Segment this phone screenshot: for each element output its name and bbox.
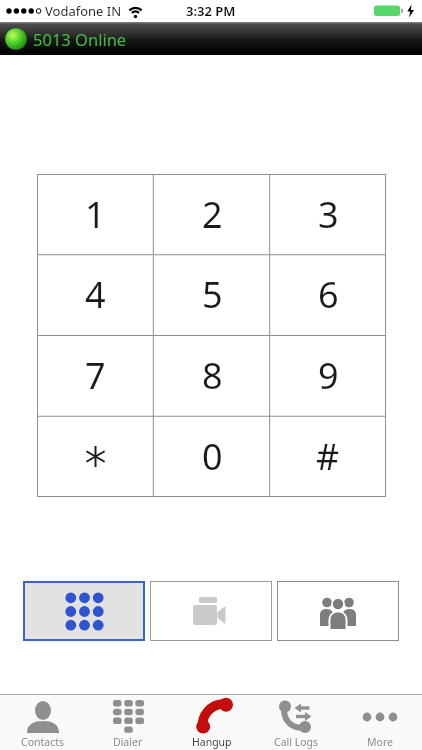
staticText: Contacts bbox=[21, 735, 65, 749]
button[interactable]: More bbox=[338, 695, 422, 750]
button[interactable] bbox=[23, 581, 145, 641]
staticText: 6 bbox=[318, 270, 339, 319]
staticText: # bbox=[316, 432, 340, 481]
button[interactable]: Contacts bbox=[0, 695, 85, 750]
button[interactable]: 3 bbox=[270, 174, 386, 254]
button[interactable]: Call Logs bbox=[254, 695, 338, 750]
staticText: 0 bbox=[202, 432, 223, 481]
staticText: Hangup bbox=[192, 735, 232, 749]
button[interactable]: 7 bbox=[37, 335, 154, 416]
button[interactable]: # bbox=[270, 416, 386, 497]
button[interactable]: 2 bbox=[154, 174, 270, 254]
button[interactable]: 8 bbox=[154, 335, 270, 416]
staticText: Vodafone IN bbox=[45, 2, 122, 20]
staticText: 1 bbox=[85, 190, 106, 239]
button[interactable] bbox=[37, 416, 154, 497]
button[interactable]: 4 bbox=[37, 254, 154, 335]
button[interactable]: 5 bbox=[154, 254, 270, 335]
button[interactable]: 9 bbox=[270, 335, 386, 416]
button[interactable]: 6 bbox=[270, 254, 386, 335]
staticText: 3:32 PM bbox=[186, 2, 236, 20]
button[interactable]: Hangup bbox=[170, 695, 254, 750]
staticText: More bbox=[367, 735, 393, 749]
button[interactable] bbox=[150, 581, 272, 641]
staticText: Dialer bbox=[113, 735, 143, 749]
staticText: 2 bbox=[202, 190, 223, 239]
button[interactable]: 1 bbox=[37, 174, 154, 254]
button[interactable]: 0 bbox=[154, 416, 270, 497]
staticText: Call Logs bbox=[274, 735, 319, 749]
staticText: 5 bbox=[202, 270, 223, 319]
staticText: 5013 Online bbox=[33, 28, 127, 50]
staticText: 3 bbox=[318, 190, 339, 239]
staticText: 7 bbox=[85, 351, 106, 400]
staticText: 4 bbox=[85, 270, 106, 319]
button[interactable]: Dialer bbox=[85, 695, 170, 750]
button[interactable] bbox=[277, 581, 399, 641]
staticText: 8 bbox=[202, 351, 223, 400]
staticText: 9 bbox=[318, 351, 339, 400]
